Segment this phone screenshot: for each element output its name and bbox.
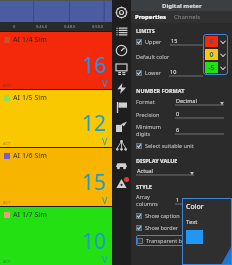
staticText: Select suitable unit — [145, 142, 194, 149]
button[interactable]: Properties — [135, 13, 167, 21]
button[interactable]: 0 — [175, 110, 224, 119]
button[interactable]: AI 1/5 Sim — [0, 90, 112, 147]
button[interactable]: AI 1/6 Sim — [0, 148, 112, 206]
button[interactable]: Actual — [136, 167, 194, 176]
staticText: 0 — [209, 50, 214, 60]
staticText: V — [102, 253, 108, 265]
button[interactable]: Color — [182, 198, 232, 265]
button[interactable]: -5 — [205, 62, 226, 73]
staticText: Default color — [136, 53, 170, 60]
staticText: DISPLAY VALUE — [136, 157, 178, 164]
staticText: V — [206, 38, 210, 45]
button[interactable]: Flag — [112, 98, 131, 117]
staticText: Color — [186, 202, 204, 212]
staticText: Show border — [145, 224, 179, 231]
staticText: AI 1/6 Sim — [13, 151, 47, 161]
button[interactable]: Show caption — [136, 211, 180, 220]
other: Expand color — [220, 65, 226, 71]
staticText: V — [102, 135, 108, 147]
staticText: 15 — [82, 168, 107, 197]
staticText: Properties — [135, 13, 167, 21]
button[interactable]: Gauge — [112, 41, 131, 60]
staticText: ACT — [3, 141, 11, 146]
staticText: Show caption — [145, 212, 180, 219]
button[interactable]: AI 1/4 Sim — [0, 32, 112, 89]
button[interactable]: List — [112, 22, 131, 41]
staticText: Transparent background — [146, 237, 210, 244]
button[interactable]: Network — [112, 136, 131, 155]
button[interactable]: Settings — [112, 3, 131, 22]
staticText: 1 — [176, 196, 180, 203]
other: Expand color — [220, 52, 226, 58]
staticText: 10 — [82, 227, 107, 256]
staticText: ACT — [3, 259, 11, 264]
staticText: 0 — [13, 24, 16, 29]
staticText: 12 — [82, 109, 107, 138]
button[interactable]: Digital meter — [112, 60, 131, 79]
staticText: 0 — [176, 110, 180, 117]
staticText: ACT — [3, 200, 11, 205]
staticText: AI 1/5 Sim — [13, 93, 47, 103]
staticText: Digital meter — [162, 2, 202, 10]
button[interactable]: AI 1/7 Sim — [0, 207, 112, 265]
staticText: Channels — [174, 13, 201, 21]
staticText: Upper — [145, 38, 162, 45]
staticText: V — [205, 69, 209, 76]
button[interactable]: 15 — [170, 37, 204, 46]
button[interactable]: Decimal — [175, 97, 224, 106]
staticText: 0:46.0 — [36, 24, 48, 29]
staticText: AI 1/4 Sim — [13, 35, 47, 45]
staticText: NUMBER FORMAT — [136, 87, 185, 94]
button[interactable]: 1 — [175, 196, 224, 205]
staticText: Minimum digits — [136, 123, 172, 137]
button[interactable]: Alerts — [112, 174, 131, 193]
button[interactable]: 5 — [205, 36, 226, 47]
staticText: AI 1/7 Sim — [13, 210, 47, 220]
button[interactable]: 0 — [205, 49, 226, 60]
staticText: Text — [186, 218, 198, 226]
staticText: 6 — [176, 126, 180, 133]
button[interactable]: Vehicle — [112, 155, 131, 174]
button[interactable]: 6 — [175, 126, 224, 135]
button[interactable]: Show border — [136, 223, 179, 232]
staticText: Precision — [136, 111, 160, 118]
button[interactable]: Select suitable unit — [136, 141, 194, 150]
staticText: Lower — [145, 69, 161, 76]
staticText: -5 — [208, 63, 215, 73]
staticText: V — [102, 194, 108, 206]
button[interactable]: Channels — [174, 13, 201, 21]
staticText: ACT — [3, 83, 11, 88]
staticText: Array columns — [136, 193, 172, 207]
staticText: 0:48.0 — [64, 24, 76, 29]
other: Expand color — [220, 39, 226, 45]
staticText: Format — [136, 98, 155, 105]
staticText: STYLE — [136, 183, 152, 190]
staticText: V — [102, 77, 108, 89]
staticText: 15 — [171, 37, 178, 44]
staticText: 5 — [209, 37, 214, 47]
button[interactable]: Export — [112, 117, 131, 136]
button[interactable]: Transparent background — [137, 236, 210, 245]
staticText: Actual — [137, 167, 154, 174]
staticText: 0:50.0 — [92, 24, 104, 29]
button[interactable]: Pulse — [112, 79, 131, 98]
staticText: 10 — [170, 68, 177, 75]
button[interactable]: 10 — [169, 68, 203, 77]
staticText: 16 — [82, 51, 107, 80]
staticText: Decimal — [176, 97, 197, 104]
staticText: LIMITS — [136, 27, 155, 34]
